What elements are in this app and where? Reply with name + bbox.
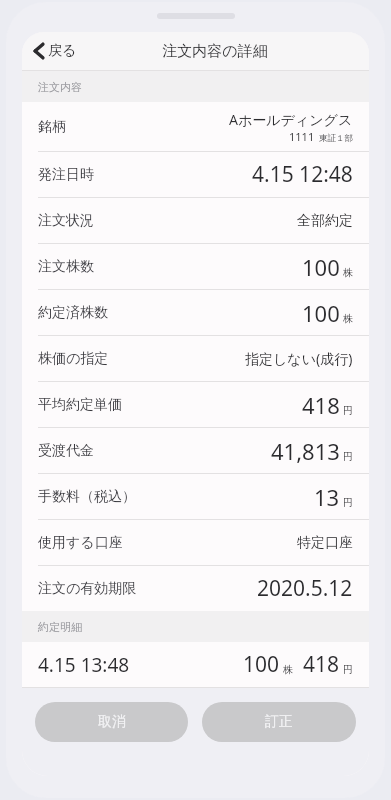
staticText: 4.15 12:48 bbox=[252, 160, 353, 189]
staticText: 注文株数 bbox=[38, 258, 94, 276]
button[interactable]: 4.15 13:48 bbox=[22, 642, 369, 687]
staticText: Aホールディングス bbox=[229, 110, 353, 129]
staticText: 418 bbox=[302, 390, 340, 420]
staticText: 特定口座 bbox=[297, 534, 353, 552]
button[interactable]: 訂正 bbox=[202, 702, 356, 742]
staticText: 訂正 bbox=[265, 713, 293, 731]
staticText: 平均約定単価 bbox=[38, 396, 122, 414]
staticText: 発注日時 bbox=[38, 166, 94, 184]
button[interactable]: 約定済株数 bbox=[22, 290, 369, 336]
staticText: 銘柄 bbox=[38, 118, 66, 136]
button[interactable]: 株価の指定 bbox=[22, 336, 369, 382]
staticText: 2020.5.12 bbox=[257, 574, 353, 603]
button[interactable]: 平均約定単価 bbox=[22, 382, 369, 428]
staticText: 100 bbox=[302, 298, 340, 328]
staticText: 円 bbox=[343, 450, 353, 463]
staticText: 1111 bbox=[289, 129, 315, 144]
staticText: 円 bbox=[343, 496, 353, 509]
button[interactable]: 使用する口座 bbox=[22, 520, 369, 566]
staticText: 受渡代金 bbox=[38, 442, 94, 460]
staticText: 円 bbox=[343, 404, 353, 417]
button[interactable]: 戻る bbox=[28, 38, 81, 64]
staticText: 13 bbox=[314, 482, 340, 512]
button[interactable]: 発注日時 bbox=[22, 152, 369, 198]
staticText: 株 bbox=[283, 663, 293, 676]
button[interactable]: 銘柄 bbox=[22, 102, 369, 152]
staticText: 株 bbox=[343, 266, 353, 279]
staticText: 戻る bbox=[48, 42, 77, 60]
button[interactable]: 注文株数 bbox=[22, 244, 369, 290]
staticText: 手数料（税込） bbox=[38, 488, 136, 506]
staticText: 100 bbox=[243, 650, 280, 679]
staticText: 株 bbox=[343, 312, 353, 325]
staticText: 約定明細 bbox=[38, 620, 82, 634]
staticText: 株価の指定 bbox=[38, 350, 109, 368]
button[interactable]: 手数料（税込） bbox=[22, 474, 369, 520]
staticText: 指定しない(成行) bbox=[245, 349, 353, 368]
staticText: 注文の有効期限 bbox=[38, 580, 137, 598]
staticText: 注文内容 bbox=[38, 80, 82, 94]
staticText: 100 bbox=[302, 252, 340, 282]
staticText: 円 bbox=[343, 663, 353, 676]
button[interactable]: 注文状況 bbox=[22, 198, 369, 244]
button[interactable]: 注文の有効期限 bbox=[22, 566, 369, 611]
staticText: 418 bbox=[303, 650, 340, 679]
staticText: 4.15 13:48 bbox=[38, 652, 130, 678]
button[interactable]: 受渡代金 bbox=[22, 428, 369, 474]
staticText: 41,813 bbox=[271, 436, 340, 466]
staticText: 使用する口座 bbox=[38, 534, 123, 552]
button[interactable]: 取消 bbox=[35, 702, 188, 742]
staticText: 取消 bbox=[98, 713, 126, 731]
staticText: 全部約定 bbox=[297, 212, 353, 230]
staticText: 注文内容の詳細 bbox=[162, 42, 268, 61]
staticText: 注文状況 bbox=[38, 212, 94, 230]
staticText: 東証１部 bbox=[319, 133, 353, 144]
staticText: 約定済株数 bbox=[38, 304, 108, 322]
